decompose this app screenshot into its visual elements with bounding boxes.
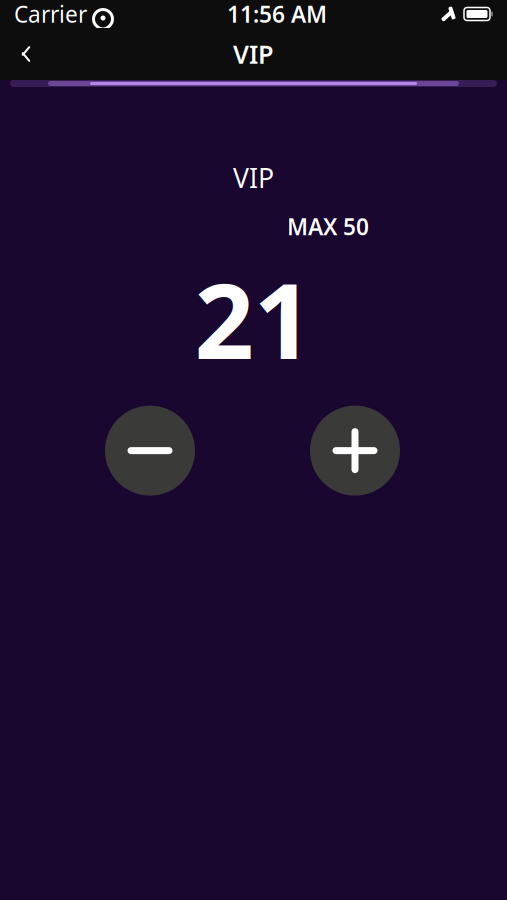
- staticText: Carrier: [14, 0, 87, 29]
- button[interactable]: Decrease: [105, 406, 195, 496]
- button[interactable]: Back: [0, 28, 52, 80]
- button[interactable]: Increase: [310, 406, 400, 496]
- staticText: VIP: [233, 160, 274, 195]
- staticText: VIP: [233, 37, 274, 71]
- staticText: MAX 50: [287, 211, 369, 241]
- staticText: 21: [194, 249, 312, 388]
- staticText: 11:56 AM: [227, 0, 327, 29]
